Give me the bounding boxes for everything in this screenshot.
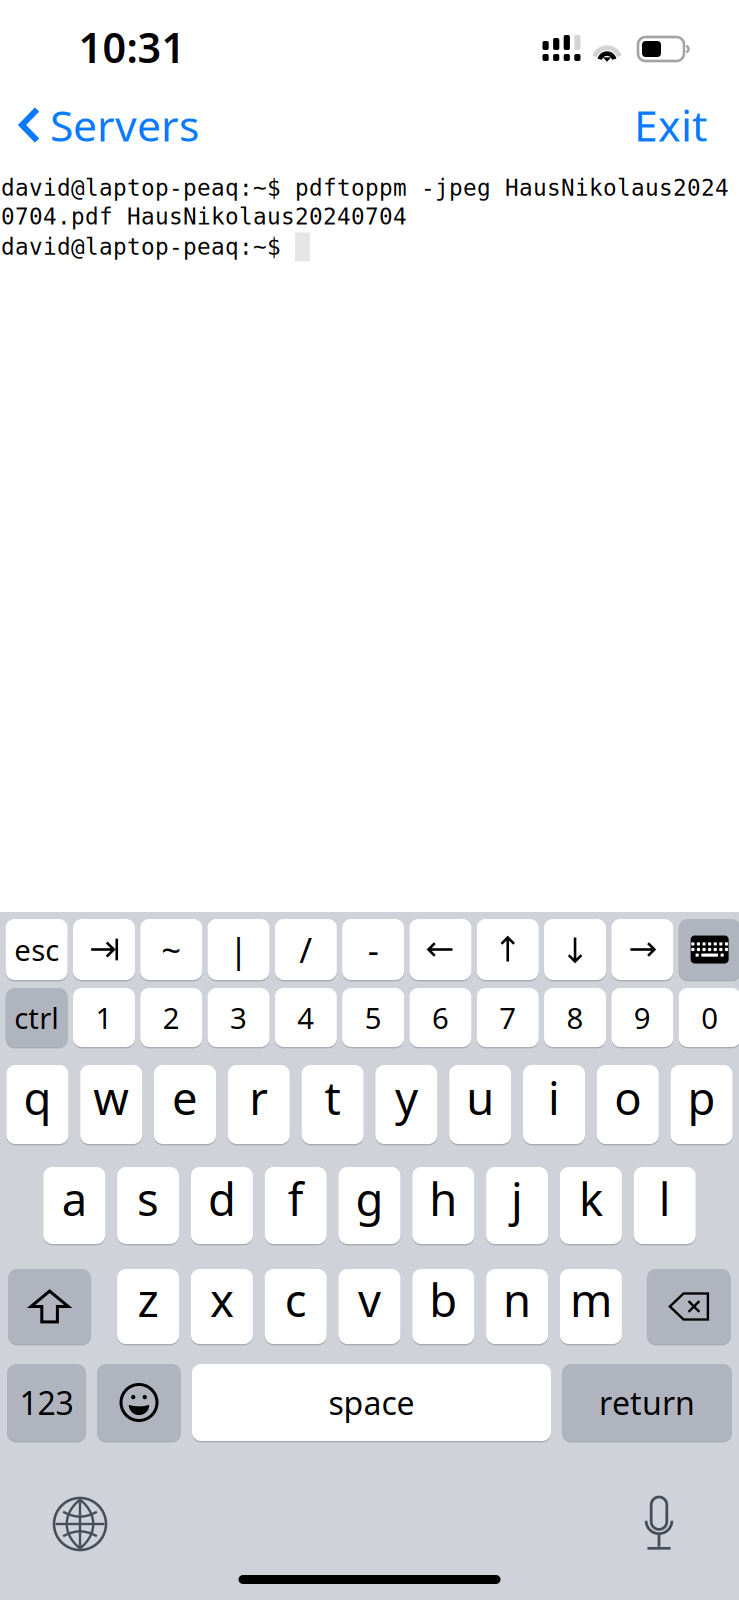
button[interactable] [477, 918, 539, 981]
button[interactable]: 4 [275, 987, 337, 1048]
button[interactable]: return [562, 1363, 732, 1442]
staticText: e [172, 1067, 198, 1128]
staticText: t [325, 1067, 341, 1128]
button[interactable]: space [192, 1363, 551, 1442]
staticText: y [395, 1067, 418, 1128]
button[interactable]: t [302, 1064, 364, 1145]
button[interactable]: k [560, 1166, 622, 1245]
staticText: david@laptop-peaq:~$ pdftoppm -jpeg Haus… [1, 175, 729, 201]
button[interactable]: r [228, 1064, 290, 1145]
staticText: ~ [161, 926, 181, 972]
button[interactable]: a [43, 1166, 105, 1245]
button[interactable]: z [117, 1268, 179, 1345]
button[interactable]: f [265, 1166, 327, 1245]
staticText: j [511, 1168, 523, 1229]
staticText: w [93, 1067, 129, 1128]
button[interactable]: p [671, 1064, 733, 1145]
staticText: 3 [230, 998, 247, 1037]
staticText: m [570, 1269, 612, 1330]
button[interactable] [647, 1268, 731, 1345]
staticText: 2 [163, 998, 180, 1037]
staticText: n [503, 1269, 531, 1330]
button[interactable]: g [338, 1166, 400, 1245]
staticText: | [229, 926, 248, 972]
button[interactable]: Next keyboard [37, 1488, 123, 1560]
button[interactable]: o [597, 1064, 659, 1145]
button[interactable]: Dictation [616, 1488, 702, 1560]
button[interactable]: ctrl [6, 987, 68, 1048]
staticText: f [288, 1168, 304, 1229]
button[interactable]: 7 [477, 987, 539, 1048]
button[interactable]: q [6, 1064, 68, 1145]
button[interactable]: j [486, 1166, 548, 1245]
staticText: k [579, 1168, 603, 1229]
button[interactable]: Exit [618, 86, 723, 164]
button[interactable]: s [117, 1166, 179, 1245]
button[interactable] [97, 1363, 181, 1442]
button[interactable] [8, 1268, 91, 1345]
button[interactable]: u [449, 1064, 511, 1145]
staticText: 10:31 [78, 20, 185, 74]
staticText: 5 [365, 998, 382, 1037]
button[interactable]: Servers [0, 86, 211, 164]
staticText: b [429, 1269, 457, 1330]
staticText: 0704.pdf HausNikolaus20240704 [1, 204, 407, 229]
staticText: a [62, 1168, 87, 1229]
staticText: 7 [499, 998, 516, 1037]
staticText: q [23, 1067, 51, 1128]
button[interactable]: h [412, 1166, 474, 1245]
button[interactable]: 1 [73, 987, 135, 1048]
button[interactable]: esc [6, 918, 68, 981]
staticText: 1 [95, 998, 112, 1037]
button[interactable]: b [412, 1268, 474, 1345]
staticText: c [285, 1269, 307, 1330]
button[interactable] [611, 918, 673, 981]
staticText: - [368, 926, 379, 972]
staticText: 123 [19, 1381, 73, 1424]
button[interactable]: n [486, 1268, 548, 1345]
staticText: h [429, 1168, 457, 1229]
button[interactable] [679, 918, 739, 981]
button[interactable]: ~ [140, 918, 202, 981]
button[interactable]: d [191, 1166, 253, 1245]
button[interactable]: | [208, 918, 270, 981]
staticText: 9 [634, 998, 651, 1037]
button[interactable] [544, 918, 606, 981]
button[interactable]: v [338, 1268, 400, 1345]
staticText: 4 [297, 998, 314, 1037]
button[interactable]: m [560, 1268, 622, 1345]
button[interactable]: 9 [611, 987, 673, 1048]
staticText: g [355, 1168, 383, 1229]
button[interactable]: 8 [544, 987, 606, 1048]
staticText: 0 [701, 998, 718, 1037]
button[interactable]: y [375, 1064, 437, 1145]
staticText: / [299, 926, 312, 972]
staticText: x [210, 1269, 234, 1330]
button[interactable]: l [634, 1166, 696, 1245]
staticText: l [659, 1168, 671, 1229]
staticText: s [137, 1168, 159, 1229]
button[interactable]: c [265, 1268, 327, 1345]
staticText: 6 [432, 998, 449, 1037]
staticText: Exit [634, 97, 707, 153]
button[interactable] [73, 918, 135, 981]
button[interactable]: / [275, 918, 337, 981]
button[interactable]: - [342, 918, 404, 981]
button[interactable]: 123 [7, 1363, 86, 1442]
button[interactable]: x [191, 1268, 253, 1345]
button[interactable]: e [154, 1064, 216, 1145]
button[interactable]: i [523, 1064, 585, 1145]
button[interactable]: 0 [679, 987, 739, 1048]
button[interactable]: 6 [409, 987, 471, 1048]
button[interactable]: 3 [208, 987, 270, 1048]
button[interactable]: 2 [140, 987, 202, 1048]
staticText: i [548, 1067, 560, 1128]
staticText: Servers [50, 97, 199, 153]
staticText: z [138, 1269, 159, 1330]
staticText: r [249, 1067, 268, 1128]
staticText: d [208, 1168, 236, 1229]
button[interactable]: w [80, 1064, 142, 1145]
button[interactable] [409, 918, 471, 981]
staticText: o [614, 1067, 641, 1128]
button[interactable]: 5 [342, 987, 404, 1048]
